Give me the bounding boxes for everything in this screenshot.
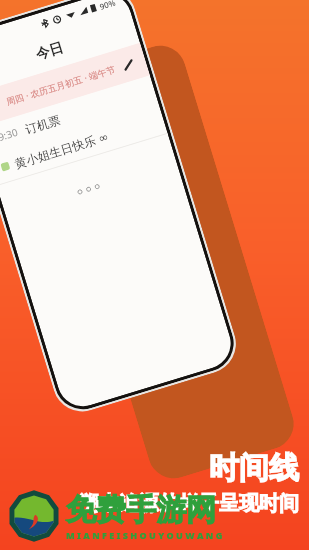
staticText: M I A N F E I S H O U Y O U W A N G [66,529,223,541]
button[interactable]: 黄小姐生日快乐 ∞ [0,104,167,185]
button[interactable]: 周四 · 农历五月初五 · 端午节 [0,43,150,128]
staticText: 时间线 [209,449,299,487]
staticText: 订机票 [23,112,62,137]
staticText: 今日 [34,39,66,64]
staticText: 免费手游网 [66,491,216,529]
staticText: 黄小姐生日快乐 ∞ [13,127,111,171]
staticText: 周四 · 农历五月初五 · 端午节 [5,62,117,107]
button[interactable]: 09:30 [0,75,159,156]
staticText: 09:30 [0,125,20,146]
staticText: 溯本追源的样子呈现时间 [79,491,299,516]
staticText: 90% [98,0,117,12]
